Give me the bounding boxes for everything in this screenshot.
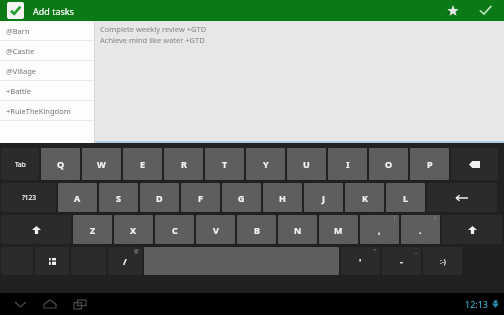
button[interactable]: App icon — [7, 2, 24, 19]
button[interactable]: U — [287, 148, 326, 180]
staticText: :-) — [440, 257, 446, 266]
button[interactable]: . — [401, 215, 440, 244]
staticText: ?123 — [22, 193, 36, 202]
button[interactable]: shift — [1, 215, 71, 244]
button[interactable]: D — [140, 183, 179, 212]
staticText: V — [213, 224, 219, 236]
button[interactable]: L — [386, 183, 425, 212]
button[interactable]: N — [278, 215, 317, 244]
button[interactable]: W — [82, 148, 121, 180]
button[interactable]: I — [328, 148, 367, 180]
button[interactable]: Q — [41, 148, 80, 180]
staticText: @Village — [6, 66, 37, 76]
button[interactable]: / — [108, 247, 142, 275]
staticText: _ — [415, 248, 418, 255]
staticText: ' — [359, 255, 362, 267]
staticText: T — [222, 158, 228, 170]
button[interactable]: , — [360, 215, 399, 244]
button[interactable]: @Castle — [0, 41, 94, 60]
button[interactable]: V — [196, 215, 235, 244]
staticText: W — [97, 158, 106, 170]
button[interactable]: Tab — [1, 148, 39, 180]
staticText: +RuleTheKingdom — [6, 106, 71, 116]
button[interactable]: Z — [73, 215, 112, 244]
staticText: / — [123, 255, 127, 267]
staticText: M — [334, 224, 343, 236]
button[interactable]: @Barn — [0, 21, 94, 40]
button[interactable]: @Village — [0, 61, 94, 80]
staticText: C — [172, 224, 178, 236]
button[interactable]: backspace — [451, 148, 498, 180]
staticText: X — [130, 224, 137, 236]
staticText: A — [74, 192, 81, 204]
staticText: H — [279, 192, 286, 204]
staticText: I — [346, 158, 350, 170]
staticText: @Castle — [6, 46, 35, 56]
staticText: " — [374, 248, 377, 255]
button[interactable]: enter — [427, 183, 497, 212]
staticText: +Battle — [6, 86, 31, 96]
button[interactable]: settings — [35, 247, 69, 275]
staticText: Complete weekly review +GTD — [100, 24, 207, 34]
button[interactable]: Y — [246, 148, 285, 180]
staticText: K — [362, 192, 368, 204]
button[interactable]: H — [263, 183, 302, 212]
staticText: @Barn — [6, 26, 30, 36]
button[interactable]: G — [222, 183, 261, 212]
staticText: - — [400, 255, 403, 267]
button[interactable]: Home — [40, 294, 60, 314]
staticText: ? — [434, 216, 437, 223]
staticText: , — [378, 224, 381, 236]
staticText: J — [322, 192, 325, 204]
staticText: D — [156, 192, 163, 204]
staticText: ! — [394, 216, 396, 223]
button[interactable]: Done — [474, 0, 496, 21]
button[interactable]: O — [369, 148, 408, 180]
staticText: P — [427, 158, 433, 170]
staticText: F — [198, 192, 203, 204]
staticText: O — [385, 158, 393, 170]
button[interactable]: M — [319, 215, 358, 244]
button[interactable]: +Battle — [0, 81, 94, 100]
staticText: E — [140, 158, 146, 170]
button[interactable]: +RuleTheKingdom — [0, 101, 94, 120]
button[interactable]: F — [181, 183, 220, 212]
staticText: U — [303, 158, 310, 170]
staticText: G — [238, 192, 245, 204]
button[interactable]: shift — [442, 215, 502, 244]
button[interactable]: ' — [341, 247, 380, 275]
button[interactable]: E — [123, 148, 162, 180]
staticText: 12:13 — [465, 298, 489, 310]
staticText: R — [181, 158, 187, 170]
button[interactable]: Hide keyboard — [10, 294, 30, 314]
staticText: B — [254, 224, 260, 236]
staticText: Z — [90, 224, 96, 236]
staticText: S — [116, 192, 121, 204]
button[interactable]: C — [155, 215, 194, 244]
button[interactable]: P — [410, 148, 449, 180]
staticText: Q — [57, 158, 65, 170]
button[interactable]: - — [382, 247, 421, 275]
staticText: L — [403, 192, 409, 204]
staticText: Achieve mind like water +GTD — [100, 35, 205, 45]
button[interactable]: :-) — [423, 247, 462, 275]
staticText: N — [294, 224, 302, 236]
button[interactable]: A — [58, 183, 97, 212]
button[interactable]: ?123 — [1, 183, 56, 212]
button[interactable]: Recent apps — [70, 294, 90, 314]
staticText: Add tasks — [33, 5, 74, 17]
staticText: . — [419, 224, 422, 236]
button[interactable]: S — [99, 183, 138, 212]
button[interactable]: B — [237, 215, 276, 244]
button[interactable]: J — [304, 183, 343, 212]
staticText: Y — [263, 158, 269, 170]
button[interactable]: T — [205, 148, 244, 180]
button[interactable]: Star — [442, 0, 464, 21]
button[interactable]: K — [345, 183, 384, 212]
button[interactable]: R — [164, 148, 203, 180]
staticText: Tab — [15, 160, 26, 169]
button[interactable]: X — [114, 215, 153, 244]
